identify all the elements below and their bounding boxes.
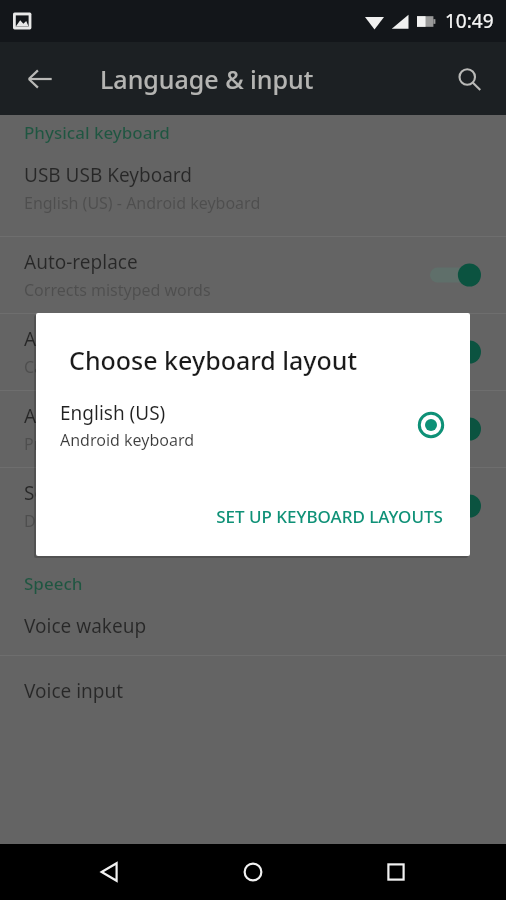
button[interactable]: Auto-replace <box>0 237 506 313</box>
button[interactable]: Voice wakeup <box>0 609 506 643</box>
button[interactable]: Navigate up <box>14 53 66 105</box>
button[interactable]: Selector icon <box>0 468 506 544</box>
staticText: Choose keyboard layout <box>69 343 358 377</box>
staticText: USB USB Keyboard <box>24 162 192 188</box>
staticText: Corrects mistyped words <box>24 279 211 301</box>
button[interactable]: Toggle <box>430 412 486 446</box>
staticText: Voice wakeup <box>24 613 147 639</box>
staticText: Auto-capitalization <box>24 326 191 352</box>
staticText: Auto-punctuate <box>24 403 164 429</box>
button[interactable]: Search <box>444 54 494 104</box>
button[interactable]: Back <box>77 844 143 900</box>
staticText: Speech <box>24 572 83 595</box>
button[interactable]: Toggle <box>430 335 486 369</box>
staticText: English (US) - Android keyboard <box>24 192 261 214</box>
button[interactable]: USB USB Keyboard <box>0 156 506 220</box>
button[interactable]: Auto-punctuate <box>0 391 506 467</box>
button[interactable]: SET UP KEYBOARD LAYOUTS <box>202 495 457 538</box>
staticText: 10:49 <box>445 8 494 34</box>
button[interactable]: Home <box>220 844 286 900</box>
staticText: Capitalize the first word <box>24 356 202 378</box>
button[interactable]: Toggle <box>430 258 486 292</box>
staticText: Physical keyboard <box>24 121 170 144</box>
staticText: Voice input <box>24 678 124 704</box>
staticText: English (US) <box>60 400 166 426</box>
staticText: Android keyboard <box>60 429 195 451</box>
button[interactable]: Auto-capitalization <box>0 314 506 390</box>
staticText: SET UP KEYBOARD LAYOUTS <box>216 505 443 528</box>
staticText: Display input method selector icon <box>24 510 285 532</box>
button[interactable]: English (US) <box>36 393 470 457</box>
button[interactable]: Voice input <box>0 674 506 708</box>
button[interactable]: Recent apps <box>363 844 429 900</box>
button[interactable]: Toggle <box>430 489 486 523</box>
staticText: Language & input <box>100 62 314 96</box>
staticText: Selector icon <box>24 480 139 506</box>
staticText: Auto-replace <box>24 249 138 275</box>
staticText: Press space key twice <box>24 433 185 455</box>
